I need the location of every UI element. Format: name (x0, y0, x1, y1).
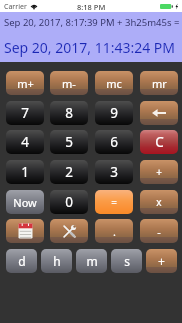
staticText: 3 (110, 163, 118, 181)
staticText: m+ (17, 76, 34, 91)
button[interactable]: mc (95, 71, 133, 95)
button[interactable]: s (111, 249, 142, 273)
staticText: . (113, 224, 116, 239)
staticText: Carrier (4, 2, 27, 12)
button[interactable]: m (76, 249, 107, 273)
button[interactable]: mr (140, 71, 178, 95)
staticText: mc (106, 76, 122, 91)
staticText: C (155, 133, 164, 151)
staticText: m (86, 253, 98, 269)
staticText: - (157, 224, 161, 239)
button[interactable]: 6 (95, 130, 133, 154)
button[interactable]: 5 (50, 130, 88, 154)
staticText: mr (152, 76, 167, 91)
staticText: Now (13, 195, 37, 210)
button[interactable]: Now (6, 190, 44, 214)
button[interactable]: 9 (95, 101, 133, 125)
button[interactable]: 1 (6, 160, 44, 184)
staticText: 5 (65, 133, 73, 151)
button[interactable]: C (140, 130, 178, 154)
staticText: + (156, 165, 162, 179)
button[interactable]: m- (50, 71, 88, 95)
button[interactable]: d (6, 249, 37, 273)
staticText: s (124, 253, 130, 269)
button[interactable]: 8 (50, 101, 88, 125)
staticText: 6 (110, 133, 118, 151)
button[interactable]: = (95, 190, 133, 214)
button[interactable]: h (41, 249, 72, 273)
staticText: = (111, 195, 117, 209)
button[interactable]: 0 (50, 190, 88, 214)
staticText: h (53, 253, 61, 269)
staticText: 1 (21, 163, 29, 181)
staticText: 0 (65, 193, 73, 211)
button[interactable]: . (95, 219, 133, 243)
staticText: + (158, 253, 165, 269)
button[interactable]: - (140, 219, 178, 243)
button[interactable]: 7 (6, 101, 44, 125)
staticText: 9 (110, 104, 118, 122)
button[interactable]: 3 (95, 160, 133, 184)
button[interactable]: Backspace (140, 101, 178, 125)
button[interactable]: 4 (6, 130, 44, 154)
staticText: m- (62, 76, 76, 91)
button[interactable]: + (146, 249, 177, 273)
staticText: d (18, 253, 26, 269)
staticText: 7 (21, 104, 29, 122)
staticText: 2 (65, 163, 73, 181)
button[interactable]: x (140, 190, 178, 214)
staticText: 4 (21, 133, 29, 151)
button[interactable]: + (140, 160, 178, 184)
staticText: x (156, 195, 162, 209)
button[interactable]: m+ (6, 71, 44, 95)
staticText: Sep 20, 2017, 11:43:24 PM (4, 38, 176, 57)
staticText: 8:18 PM (77, 2, 106, 12)
button[interactable]: Pick date (6, 219, 44, 243)
button[interactable]: 2 (50, 160, 88, 184)
button[interactable]: Settings (50, 219, 88, 243)
staticText: 8 (65, 104, 73, 122)
staticText: Sep 20, 2017, 8:17:39 PM + 3h25m45s = (4, 16, 180, 29)
